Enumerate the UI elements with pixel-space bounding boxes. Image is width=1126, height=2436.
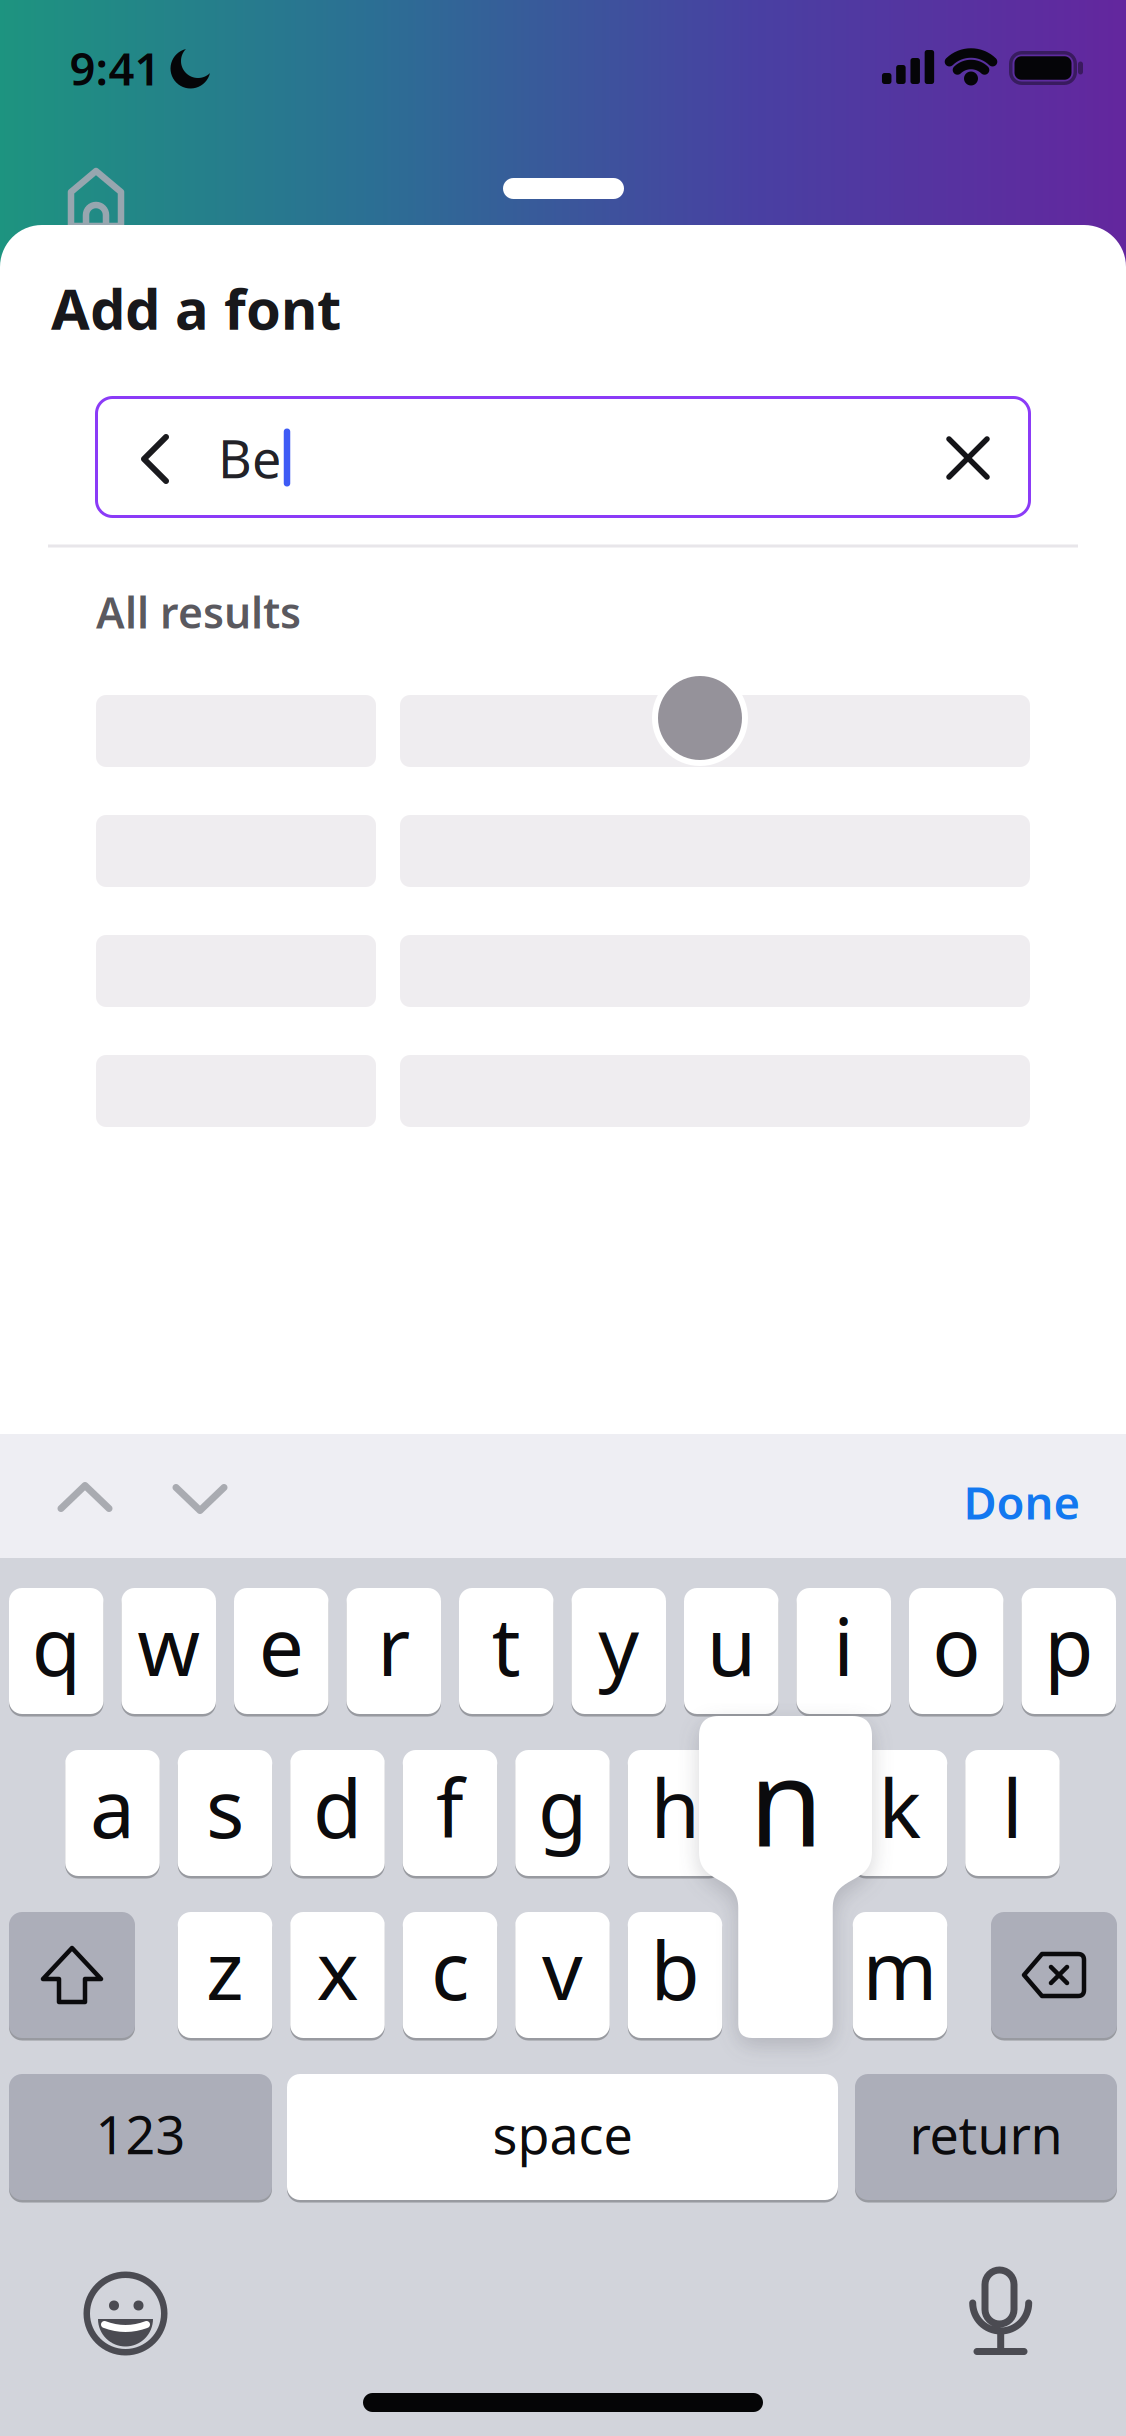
button[interactable] [174,1485,226,1512]
button[interactable]: v [515,1912,610,2038]
button[interactable]: return [855,2074,1117,2200]
button[interactable]: y [571,1588,666,1714]
staticText: w [137,1592,200,1698]
staticText: y [598,1592,639,1698]
staticText: p [1044,1592,1093,1698]
button[interactable] [142,435,168,483]
button[interactable]: i [796,1588,891,1714]
staticText: space [492,2099,632,2169]
button[interactable]: u [684,1588,778,1714]
button[interactable]: b [628,1912,722,2038]
button[interactable]: e [234,1588,328,1714]
button[interactable]: x [290,1912,385,2038]
button[interactable] [83,2271,167,2355]
button[interactable] [59,1483,111,1510]
staticText: Done [963,1472,1080,1532]
button[interactable] [9,1912,135,2038]
button[interactable] [949,439,987,477]
button[interactable]: m [853,1912,947,2038]
staticText: c [431,1916,469,2022]
staticText: v [542,1916,583,2022]
staticText: 123 [95,2099,185,2169]
button[interactable]: a [65,1750,160,1876]
staticText: x [316,1916,358,2022]
button[interactable]: z [178,1912,272,2038]
button[interactable]: q [9,1588,103,1714]
button[interactable]: o [909,1588,1003,1714]
button[interactable] [95,396,1031,518]
staticText: h [650,1754,699,1860]
staticText: q [32,1592,81,1698]
button[interactable]: c [403,1912,497,2038]
button[interactable]: k [853,1750,947,1876]
button[interactable]: p [1021,1588,1116,1714]
staticText: Add a font [51,271,341,345]
button[interactable]: n [698,1716,876,2040]
staticText: m [862,1916,937,2022]
staticText: z [206,1916,244,2022]
button[interactable] [68,169,124,227]
button[interactable]: t [459,1588,553,1714]
staticText: s [206,1754,244,1860]
staticText: d [313,1754,362,1860]
staticText: r [377,1592,410,1698]
staticText: t [492,1592,521,1698]
staticText: j [777,1754,798,1860]
button[interactable]: g [515,1750,610,1876]
button[interactable]: w [121,1588,216,1714]
staticText: n [749,1720,823,1880]
staticText: f [436,1754,464,1860]
button[interactable]: j [740,1750,835,1876]
staticText: o [932,1592,980,1698]
staticText: a [90,1754,135,1860]
button[interactable]: space [287,2074,838,2200]
staticText: l [1002,1754,1023,1860]
button[interactable]: Done [963,1472,1080,1532]
staticText: All results [96,584,301,640]
staticText: e [259,1592,304,1698]
staticText: k [878,1754,921,1860]
button[interactable]: s [178,1750,272,1876]
button[interactable]: 123 [9,2074,272,2200]
staticText: i [833,1592,854,1698]
button[interactable] [991,1912,1117,2038]
staticText: g [538,1754,587,1860]
staticText: 9:41 [69,38,160,98]
button[interactable]: l [965,1750,1060,1876]
button[interactable] [971,2270,1031,2354]
staticText: Be [218,423,281,493]
button[interactable]: f [403,1750,497,1876]
staticText: b [650,1916,699,2022]
staticText: return [909,2099,1062,2169]
button[interactable]: h [628,1750,722,1876]
staticText: u [707,1592,756,1698]
button[interactable]: r [346,1588,441,1714]
button[interactable]: d [290,1750,385,1876]
